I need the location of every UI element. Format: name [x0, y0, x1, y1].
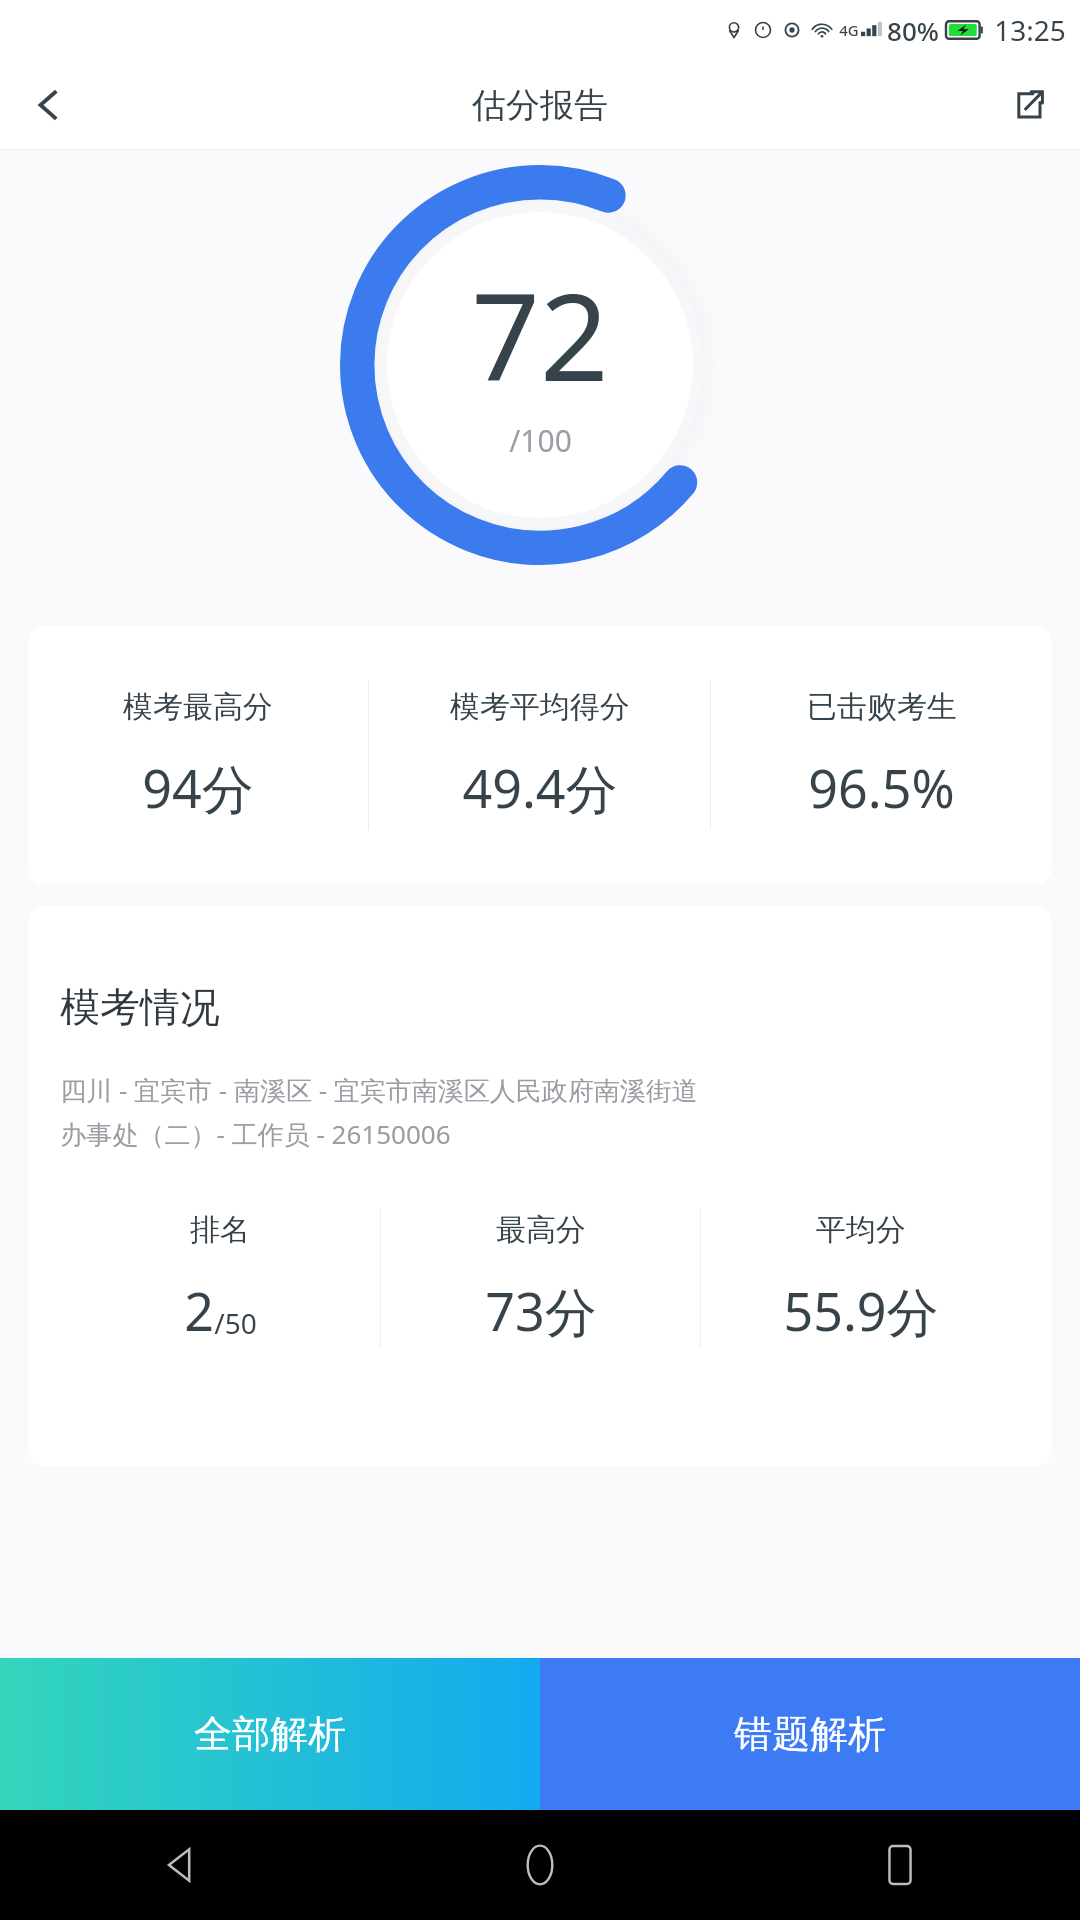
button[interactable]: 模考情况 [28, 906, 1052, 1466]
staticText: 估分报告 [472, 84, 608, 127]
staticText: 平均分 [816, 1211, 906, 1249]
button[interactable]: 全部解析 [0, 1658, 540, 1810]
staticText: 73分 [485, 1275, 597, 1346]
staticText: 80% [887, 13, 939, 48]
staticText: 13:25 [994, 11, 1066, 49]
button[interactable]: Recent apps [720, 1810, 1080, 1920]
staticText: 2 [184, 1275, 214, 1346]
staticText: 办事处（二）- 工作员 - 26150006 [60, 1116, 451, 1152]
staticText: 排名 [190, 1211, 250, 1249]
staticText: 全部解析 [194, 1710, 346, 1758]
staticText: 模考最高分 [123, 688, 273, 726]
staticText: 已击败考生 [807, 688, 957, 726]
staticText: 49.4分 [462, 752, 618, 823]
staticText: /100 [509, 420, 572, 461]
staticText: 96.5% [808, 752, 955, 823]
staticText: 模考情况 [60, 982, 220, 1032]
button[interactable]: Back [10, 67, 86, 143]
button[interactable]: 错题解析 [540, 1658, 1080, 1810]
staticText: 最高分 [496, 1211, 586, 1249]
staticText: 四川 - 宜宾市 - 南溪区 - 宜宾市南溪区人民政府南溪街道 [60, 1072, 698, 1108]
staticText: /50 [214, 1304, 257, 1342]
staticText: 55.9分 [783, 1275, 939, 1346]
staticText: 模考平均得分 [450, 688, 630, 726]
staticText: 错题解析 [734, 1710, 886, 1758]
staticText: 72 [471, 253, 609, 416]
staticText: 4G [839, 20, 859, 40]
button[interactable]: Back [0, 1810, 360, 1920]
staticText: 94分 [142, 752, 254, 823]
button[interactable]: 模考最高分 [28, 626, 1052, 884]
button[interactable]: Home [360, 1810, 720, 1920]
button[interactable]: Share [990, 67, 1066, 143]
